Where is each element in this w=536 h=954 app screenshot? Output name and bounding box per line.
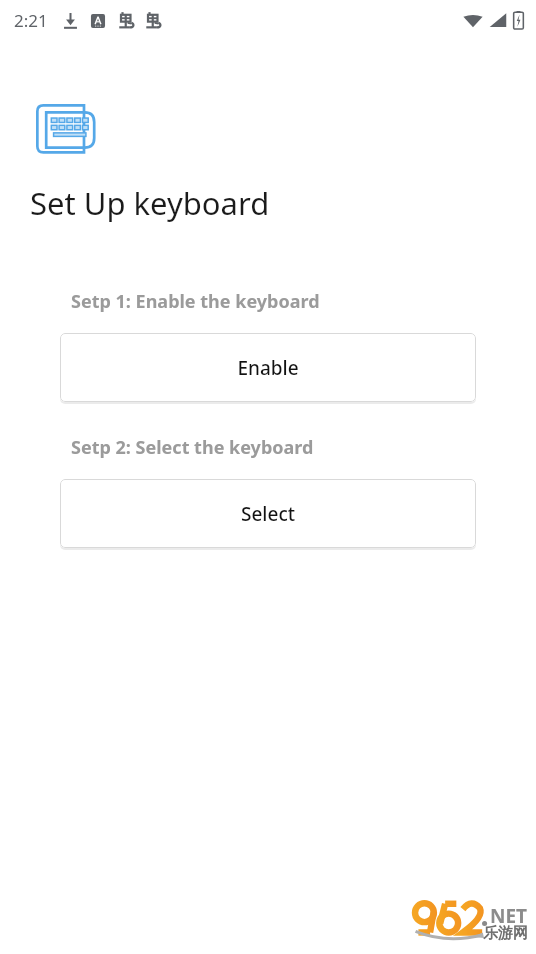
button[interactable]: Select — [60, 479, 476, 548]
staticText: Set Up keyboard — [30, 182, 270, 224]
staticText: Setp 1: Enable the keyboard — [71, 289, 320, 314]
staticText: Select — [241, 501, 295, 527]
staticText: Enable — [237, 355, 299, 381]
staticText: Setp 2: Select the keyboard — [71, 435, 314, 460]
button[interactable]: Enable — [60, 333, 476, 402]
staticText: 2:21 — [14, 9, 48, 32]
staticText: 乐游网 — [483, 924, 528, 943]
staticText: NET — [490, 903, 528, 929]
other: 962.NET watermark — [412, 891, 530, 947]
